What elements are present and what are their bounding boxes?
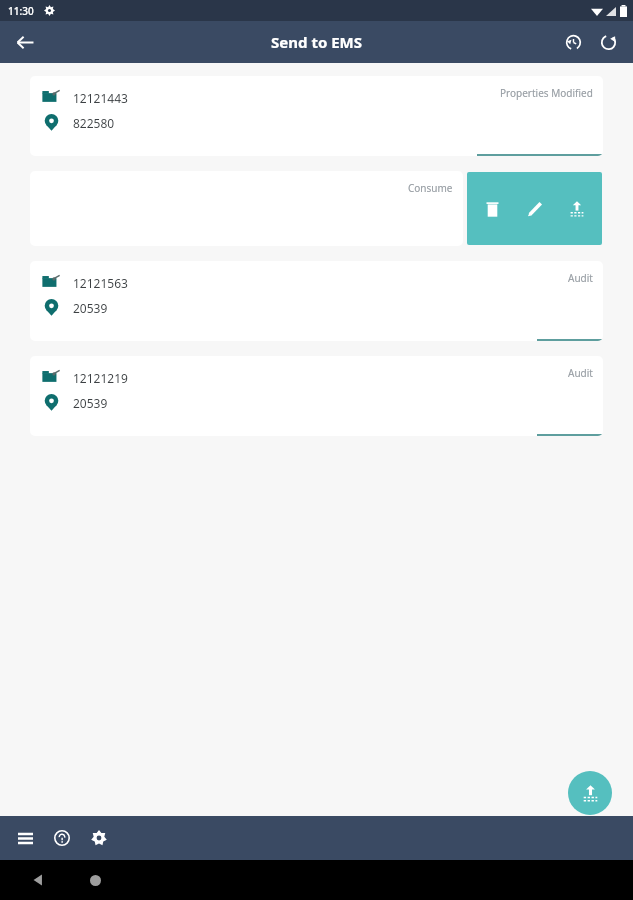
button[interactable]: Delete — [475, 192, 509, 226]
button[interactable]: Menu — [8, 821, 42, 855]
staticText: Consume — [408, 181, 453, 195]
button[interactable]: Edit — [518, 192, 552, 226]
button[interactable]: 12121443 — [30, 76, 603, 156]
button[interactable]: 12121219 — [30, 356, 603, 436]
button[interactable]: Upload — [560, 192, 594, 226]
staticText: 20539 — [73, 300, 108, 316]
staticText: Audit — [568, 271, 593, 285]
staticText: 12121443 — [73, 90, 128, 106]
staticText: 12121563 — [73, 275, 128, 291]
button[interactable]: Back — [8, 25, 42, 59]
button[interactable]: Upload all — [568, 771, 612, 815]
button[interactable]: 12121563 — [30, 261, 603, 341]
button[interactable]: History — [556, 25, 590, 59]
button[interactable]: Settings — [82, 821, 116, 855]
button[interactable]: Help — [45, 821, 79, 855]
staticText: 11:30 — [8, 4, 34, 18]
button[interactable]: Consume — [30, 171, 463, 246]
button[interactable]: Refresh — [591, 25, 625, 59]
staticText: Audit — [568, 366, 593, 380]
staticText: 12121219 — [73, 370, 128, 386]
staticText: Send to EMS — [271, 32, 362, 52]
staticText: 822580 — [73, 115, 115, 131]
staticText: Properties Modified — [500, 86, 593, 100]
staticText: 20539 — [73, 395, 108, 411]
